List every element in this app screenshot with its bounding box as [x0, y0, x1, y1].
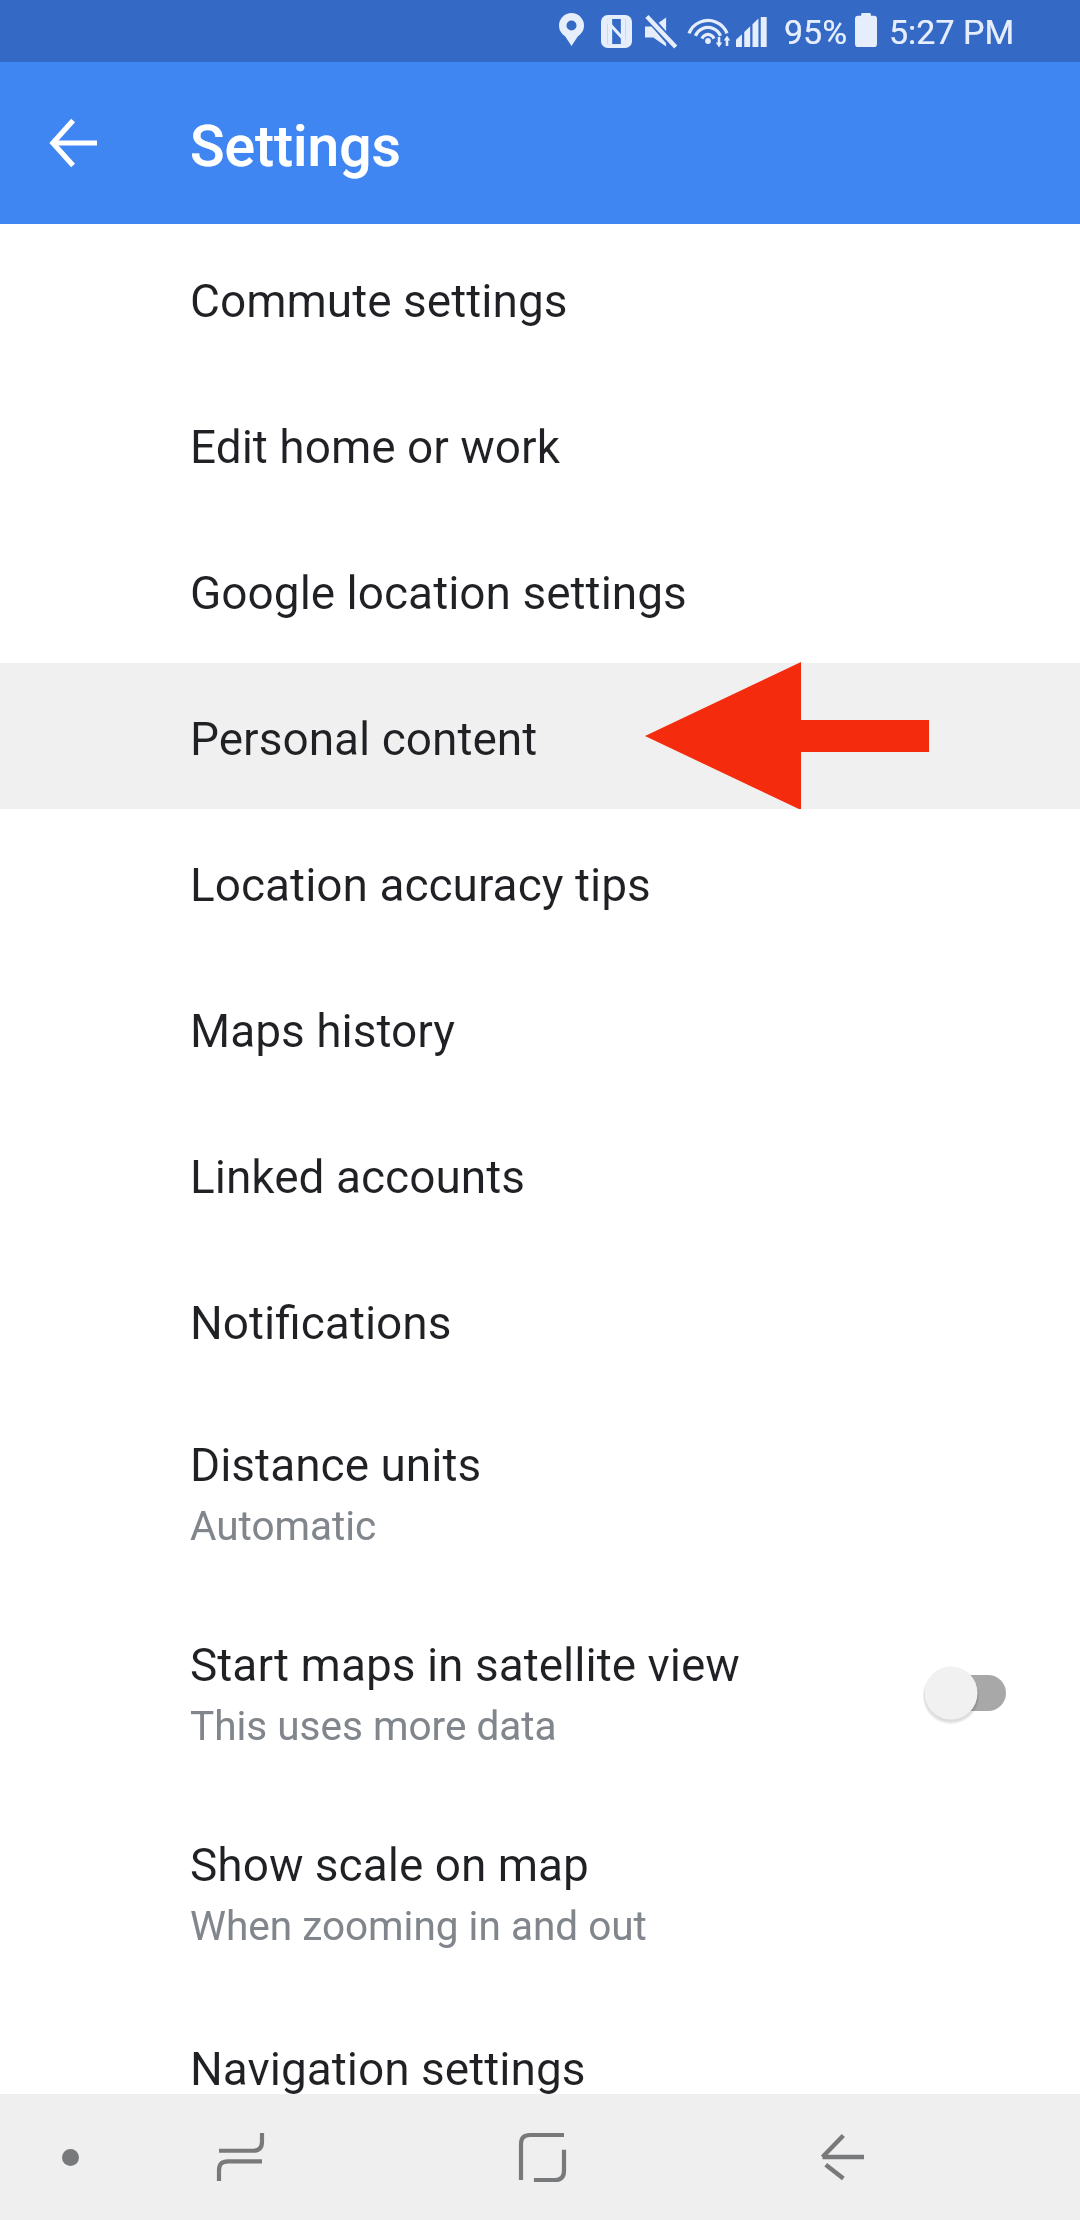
- button[interactable]: Start maps in satellite view: [0, 1593, 1080, 1793]
- staticText: Google location settings: [190, 566, 687, 620]
- button[interactable]: Distance units: [0, 1393, 1080, 1593]
- button[interactable]: Edit home or work: [0, 371, 1080, 517]
- button[interactable]: Commute settings: [0, 225, 1080, 371]
- staticText: This uses more data: [190, 1702, 557, 1749]
- staticText: 5:27 PM: [889, 12, 1015, 52]
- staticText: Personal content: [190, 712, 538, 766]
- staticText: Start maps in satellite view: [190, 1638, 740, 1692]
- staticText: 95%: [784, 12, 848, 52]
- button[interactable]: Google location settings: [0, 517, 1080, 663]
- staticText: Settings: [190, 113, 401, 180]
- button[interactable]: Maps history: [0, 955, 1080, 1101]
- button[interactable]: Location accuracy tips: [0, 809, 1080, 955]
- button[interactable]: Home: [460, 2094, 625, 2220]
- button[interactable]: Show button order: [0, 2094, 140, 2220]
- staticText: Commute settings: [190, 274, 568, 328]
- button[interactable]: Navigate up: [26, 95, 122, 191]
- staticText: Automatic: [190, 1502, 377, 1549]
- button[interactable]: Recent apps: [140, 2094, 341, 2220]
- button[interactable]: Show scale on map: [0, 1793, 1080, 1993]
- staticText: Distance units: [190, 1438, 482, 1492]
- button[interactable]: Start maps in satellite view toggle: [883, 1643, 1025, 1743]
- button[interactable]: Personal content: [0, 663, 1080, 809]
- staticText: Linked accounts: [190, 1150, 525, 1204]
- button[interactable]: Back: [760, 2094, 925, 2220]
- staticText: Edit home or work: [190, 420, 560, 474]
- button[interactable]: Navigation settings: [0, 1993, 1080, 2139]
- staticText: Show scale on map: [190, 1838, 589, 1892]
- staticText: When zooming in and out: [190, 1902, 647, 1949]
- staticText: Notifications: [190, 1296, 452, 1350]
- staticText: Location accuracy tips: [190, 858, 651, 912]
- staticText: Navigation settings: [190, 2042, 586, 2096]
- button[interactable]: Notifications: [0, 1247, 1080, 1393]
- button[interactable]: Linked accounts: [0, 1101, 1080, 1247]
- staticText: Maps history: [190, 1004, 456, 1058]
